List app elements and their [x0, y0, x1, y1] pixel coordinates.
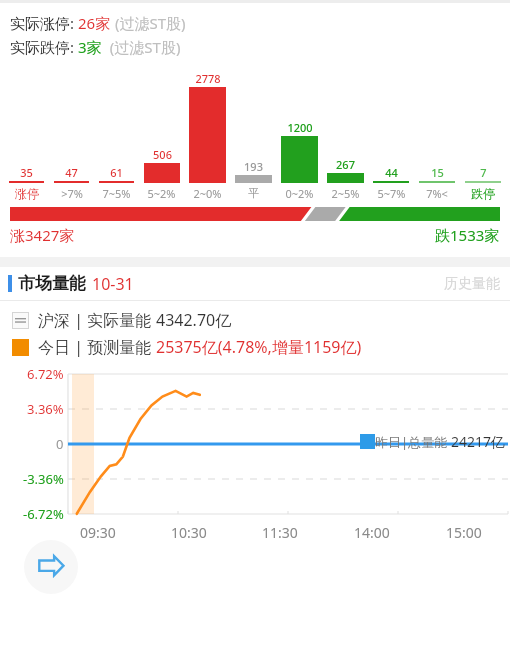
button[interactable]: 市场量能: [0, 267, 510, 300]
staticText: 2778: [195, 71, 221, 86]
staticText: 7: [480, 165, 487, 180]
staticText: 3.36%: [27, 400, 64, 418]
staticText: 11:30: [262, 523, 298, 542]
button[interactable]: 193: [230, 71, 276, 200]
staticText: 2~0%: [193, 186, 222, 201]
staticText: 26家: [78, 13, 111, 33]
staticText: 506: [153, 147, 172, 162]
button[interactable]: 267: [322, 71, 368, 201]
button[interactable]: 506: [139, 71, 184, 201]
staticText: (过滤ST股): [111, 13, 186, 33]
button[interactable]: 分享: [24, 540, 78, 594]
staticText: 6.72%: [27, 365, 64, 383]
button[interactable]: 2778: [184, 71, 230, 201]
staticText: 昨日|总量能: [375, 433, 451, 451]
button[interactable]: 15: [414, 71, 460, 201]
staticText: 25375亿(4.78%,增量1159亿): [156, 336, 362, 358]
button[interactable]: 44: [368, 71, 414, 201]
staticText: 35: [20, 165, 33, 180]
staticText: 2~5%: [331, 186, 360, 201]
staticText: 4342.70亿: [156, 309, 232, 331]
staticText: 历史量能: [444, 275, 500, 293]
staticText: 0: [56, 435, 64, 453]
staticText: 44: [385, 165, 398, 180]
staticText: 市场量能: [18, 273, 86, 294]
staticText: 涨停: [15, 186, 39, 201]
button[interactable]: 1200: [276, 71, 322, 201]
button[interactable]: 47: [49, 71, 94, 201]
staticText: 267: [336, 157, 355, 172]
staticText: 实际涨停:: [10, 13, 78, 33]
button[interactable]: 61: [94, 71, 139, 201]
staticText: 61: [110, 165, 123, 180]
staticText: 跌1533家: [435, 225, 500, 245]
staticText: 10:30: [171, 523, 207, 542]
staticText: 5~2%: [147, 186, 176, 201]
staticText: 3家: [78, 37, 102, 57]
staticText: 47: [65, 165, 78, 180]
staticText: 涨3427家: [10, 225, 75, 245]
staticText: -3.36%: [23, 470, 64, 488]
staticText: 今日 | 预测量能: [38, 336, 156, 358]
button[interactable]: 35: [4, 71, 49, 201]
staticText: -6.72%: [23, 505, 64, 523]
button[interactable]: 7: [460, 71, 506, 201]
button[interactable]: 涨跌比例: [10, 207, 500, 221]
staticText: 193: [244, 159, 263, 174]
staticText: 24217亿: [451, 432, 506, 451]
staticText: 跌停: [471, 186, 495, 201]
staticText: 09:30: [80, 523, 116, 542]
staticText: 7~5%: [102, 186, 131, 201]
staticText: 实际跌停:: [10, 37, 78, 57]
staticText: 5~7%: [377, 186, 406, 201]
staticText: 15: [431, 165, 444, 180]
staticText: 14:00: [354, 523, 390, 542]
staticText: 沪深 | 实际量能: [38, 309, 156, 331]
staticText: 7%<: [426, 186, 448, 201]
staticText: 1200: [287, 120, 313, 135]
staticText: 平: [248, 186, 259, 200]
staticText: 15:00: [446, 523, 482, 542]
button[interactable]: 昨日|总量能: [360, 432, 506, 451]
staticText: 0~2%: [285, 186, 314, 201]
staticText: (过滤ST股): [102, 37, 181, 57]
staticText: 10-31: [92, 273, 134, 295]
staticText: >7%: [61, 186, 83, 201]
